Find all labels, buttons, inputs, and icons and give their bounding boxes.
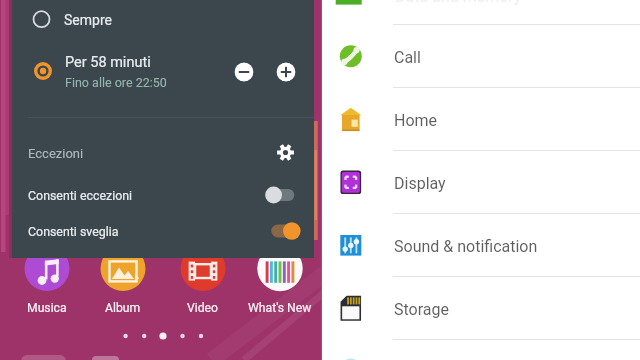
button[interactable]: Home <box>321 87 640 150</box>
staticText: Video <box>187 301 219 315</box>
button[interactable]: Increase duration <box>276 62 296 82</box>
button[interactable]: Album <box>85 246 161 322</box>
staticText: Call <box>394 48 421 67</box>
button[interactable]: Decrease duration <box>234 62 254 82</box>
staticText: Sound & notification <box>394 237 538 256</box>
staticText: What's New <box>248 301 312 315</box>
staticText: Fino alle ore 22:50 <box>65 75 167 90</box>
staticText: Display <box>394 174 446 193</box>
staticText: Home <box>394 111 438 130</box>
staticText: Eccezioni <box>28 146 84 161</box>
button[interactable]: Storage <box>321 276 640 339</box>
staticText: Storage <box>394 300 449 319</box>
staticText: Sempre <box>64 12 112 28</box>
button[interactable]: Video <box>165 246 241 322</box>
button[interactable]: Call <box>321 24 640 87</box>
staticText: Musica <box>27 301 67 315</box>
button[interactable]: Musica <box>9 246 85 322</box>
staticText: Album <box>105 301 141 315</box>
staticText: Consenti sveglia <box>28 224 119 239</box>
button[interactable]: Sound & notification <box>321 213 640 276</box>
button[interactable]: Display <box>321 150 640 213</box>
button[interactable]: Per 58 minuti <box>12 46 314 99</box>
button[interactable]: Sempre <box>12 0 314 41</box>
staticText: Data and memory <box>395 0 522 6</box>
button[interactable]: Consenti eccezioni <box>12 176 314 214</box>
button[interactable]: Exceptions settings <box>274 141 297 164</box>
staticText: Consenti eccezioni <box>28 188 133 203</box>
button[interactable]: What's New <box>242 246 318 322</box>
staticText: Per 58 minuti <box>65 54 151 71</box>
button[interactable]: Consenti sveglia <box>12 212 314 250</box>
